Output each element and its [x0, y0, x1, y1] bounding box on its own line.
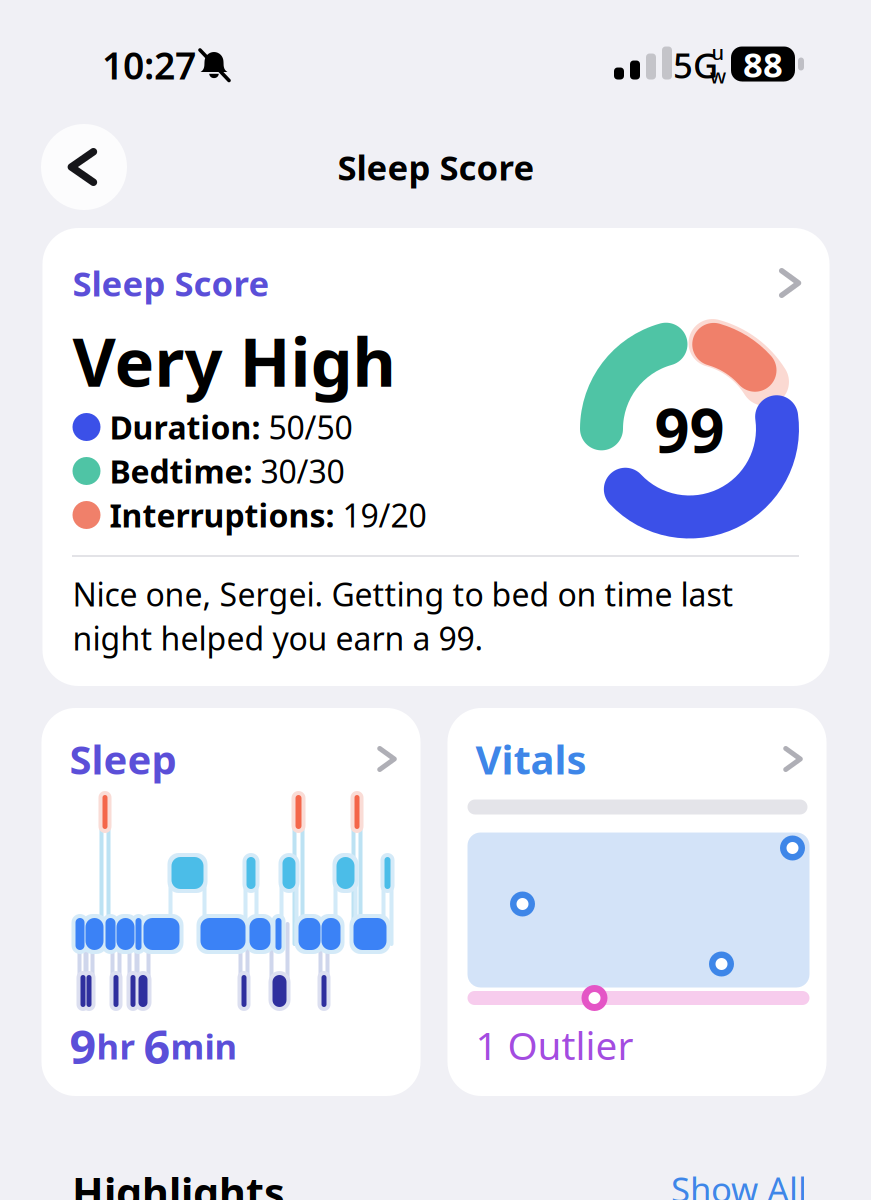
staticText: Duration:: [109, 406, 268, 448]
staticText: night helped you earn a 99.: [72, 617, 483, 659]
staticText: Show All: [671, 1166, 807, 1200]
staticText: 30/30: [260, 450, 344, 492]
staticText: min: [170, 1023, 237, 1069]
staticText: Very High: [72, 317, 395, 405]
button[interactable]: Vitals: [447, 708, 826, 1096]
staticText: 50/50: [268, 406, 352, 448]
staticText: Sleep Score: [72, 260, 269, 306]
staticText: w: [710, 62, 726, 89]
button[interactable]: Show All: [671, 1166, 807, 1200]
staticText: Interruptions:: [109, 494, 342, 536]
staticText: Bedtime:: [109, 450, 260, 492]
staticText: 88: [743, 41, 783, 87]
staticText: u: [711, 39, 724, 65]
staticText: Vitals: [475, 732, 586, 785]
button[interactable]: Sleep Score: [42, 228, 829, 686]
staticText: Sleep: [69, 732, 176, 785]
staticText: hr: [96, 1023, 143, 1069]
staticText: 19/20: [342, 494, 426, 536]
button[interactable]: Back: [41, 124, 127, 210]
staticText: Sleep Score: [337, 144, 534, 190]
staticText: 10:27: [102, 40, 196, 90]
staticText: 9: [69, 1015, 96, 1077]
staticText: 99: [654, 388, 724, 470]
staticText: 5G: [673, 42, 718, 88]
staticText: 6: [143, 1015, 170, 1077]
staticText: Nice one, Sergei. Getting to bed on time…: [72, 573, 733, 615]
staticText: Highlights: [72, 1165, 285, 1200]
button[interactable]: Sleep: [41, 708, 420, 1096]
staticText: 1 Outlier: [475, 1019, 633, 1071]
